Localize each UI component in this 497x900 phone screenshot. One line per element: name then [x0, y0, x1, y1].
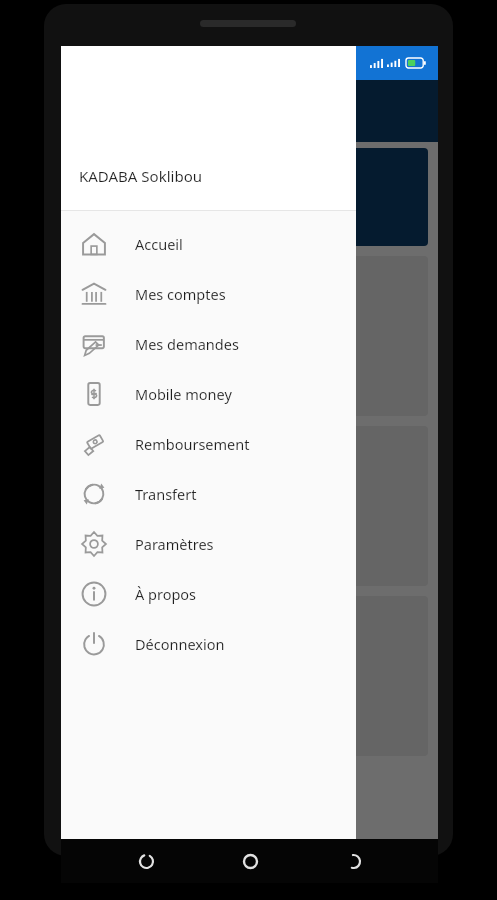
button[interactable]: Mes demandes	[61, 319, 356, 369]
button[interactable]: Recent apps	[128, 843, 164, 879]
button[interactable]: Déconnexion	[61, 619, 356, 669]
button[interactable]: Mes comptes	[61, 269, 356, 319]
button[interactable]: À propos	[61, 569, 356, 619]
staticText: À propos	[135, 584, 197, 604]
button[interactable]: Mes demandes	[71, 256, 428, 416]
staticText: Remboursement	[135, 434, 250, 454]
button[interactable]: Accueil	[61, 219, 356, 269]
staticText: Déconnexion	[135, 634, 225, 654]
staticText: Remboursement	[194, 540, 305, 559]
button[interactable]	[71, 148, 428, 246]
button[interactable]: Paramètres	[71, 596, 428, 756]
staticText: Transfert	[135, 484, 197, 504]
button[interactable]: Remboursement	[71, 426, 428, 586]
staticText: Mes demandes	[135, 334, 239, 354]
staticText: Paramètres	[135, 534, 214, 554]
staticText: Accueil	[135, 234, 183, 254]
button[interactable]: Mobile money	[61, 369, 356, 419]
staticText: Mes comptes	[135, 284, 226, 304]
button[interactable]: Home	[232, 843, 268, 879]
staticText: KADABA Soklibou	[79, 166, 202, 186]
button[interactable]: Paramètres	[61, 519, 356, 569]
button[interactable]: Transfert	[61, 469, 356, 519]
button[interactable]: Back	[335, 843, 371, 879]
button[interactable]: Remboursement	[61, 419, 356, 469]
staticText: Mobile money	[135, 384, 232, 404]
